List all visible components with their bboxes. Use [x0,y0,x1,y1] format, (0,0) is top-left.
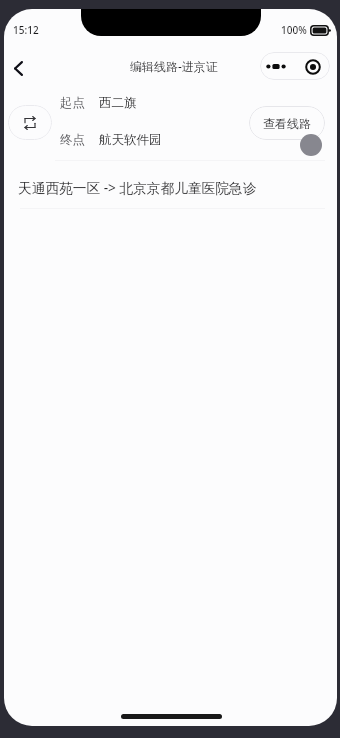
button[interactable]: Swap origin and destination [8,105,52,140]
staticText: 100% [281,23,307,37]
staticText: 查看线路 [263,116,311,131]
staticText: 终点 [60,132,85,148]
button[interactable]: Close mini program [294,52,330,80]
button[interactable]: 查看线路 [249,106,325,140]
button[interactable]: Back [4,53,33,83]
button[interactable]: 起点 [60,95,137,111]
button[interactable]: More options [260,52,294,80]
staticText: 航天软件园 [99,132,162,148]
staticText: 起点 [60,95,85,111]
staticText: 天通西苑一区 -> 北京京都儿童医院急诊 [18,178,257,197]
staticText: 编辑线路-进京证 [130,58,218,74]
staticText: 15:12 [13,23,39,37]
staticText: 西二旗 [99,95,137,111]
button[interactable]: 天通西苑一区 -> 北京京都儿童医院急诊 [4,166,337,208]
button[interactable]: 终点 [60,132,162,148]
